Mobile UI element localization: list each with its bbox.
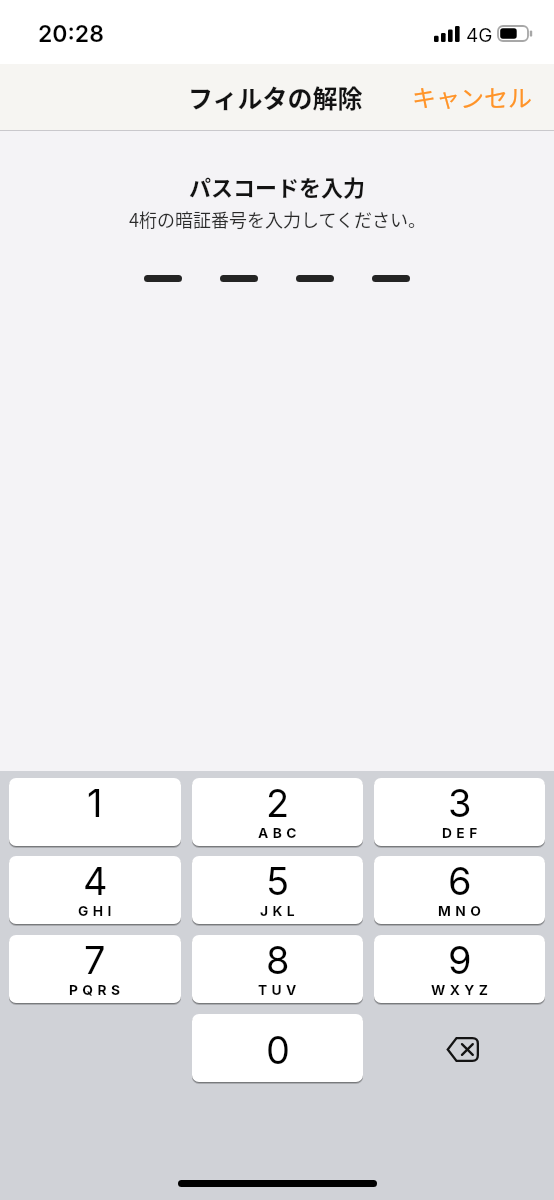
staticText: パスコードを入力 [189,170,366,202]
staticText: 8 [266,937,290,983]
staticText: 3 [448,780,472,826]
staticText: 0 [266,1027,290,1073]
staticText: 7 [84,937,106,983]
button[interactable]: 2 [192,778,363,846]
staticText: WXYZ [431,982,493,999]
staticText: PQRS [69,982,125,999]
staticText: MNO [438,903,486,920]
staticText: TUV [258,982,301,999]
staticText: キャンセル [412,79,532,114]
staticText: 4G [466,24,493,47]
button[interactable]: キャンセル [398,71,554,124]
staticText: JKL [260,903,299,920]
staticText: ABC [258,825,301,842]
staticText: 9 [448,937,472,983]
button[interactable]: 7 [9,935,181,1003]
staticText: GHI [78,903,116,920]
button[interactable]: 3 [374,778,545,846]
button[interactable]: 0 [192,1014,363,1082]
staticText: 1 [87,780,103,826]
button[interactable]: 8 [192,935,363,1003]
staticText: 4桁の暗証番号を入力してください。 [129,206,426,232]
staticText: 2 [266,780,290,826]
button[interactable]: 1 [9,778,181,846]
button[interactable]: 5 [192,856,363,924]
button[interactable]: 6 [374,856,545,924]
staticText: 4 [83,858,108,904]
staticText: DEF [442,825,482,842]
button[interactable]: Delete [374,1014,545,1082]
staticText: 6 [448,858,472,904]
button[interactable]: 4 [9,856,181,924]
staticText: フィルタの解除 [188,79,363,115]
staticText: 5 [266,858,290,904]
button[interactable]: 9 [374,935,545,1003]
staticText: 20:28 [38,20,104,48]
